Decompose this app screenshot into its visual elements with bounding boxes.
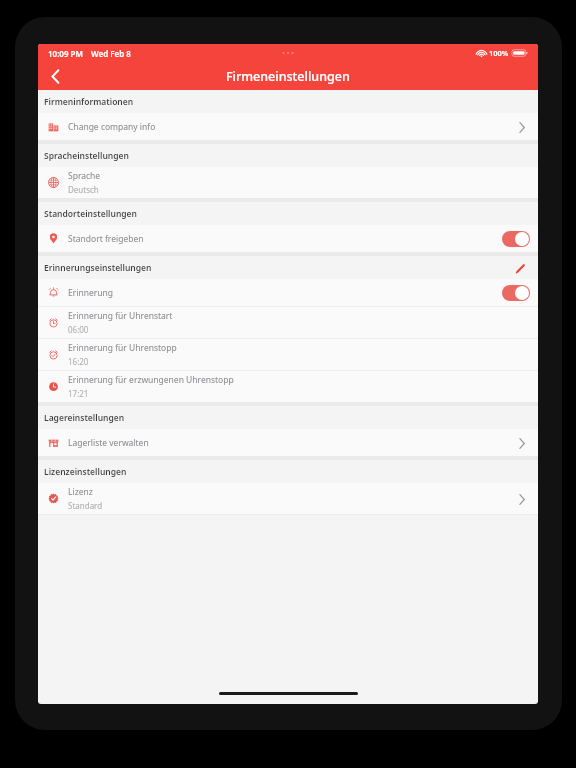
button[interactable]: Erinnerung (38, 279, 538, 306)
staticText: Erinnerungseinstellungen (44, 262, 152, 274)
staticText: Lizenz (68, 486, 93, 498)
staticText: 17:21 (68, 388, 89, 399)
staticText: Wed Feb 8 (91, 48, 131, 59)
staticText: Firmeninformationen (44, 96, 134, 108)
button[interactable]: Toggle (502, 231, 530, 247)
staticText: Lagereinstellungen (44, 412, 125, 424)
button[interactable]: Toggle (502, 285, 530, 301)
button[interactable]: Sprache (38, 167, 538, 198)
staticText: Spracheinstellungen (44, 150, 129, 162)
staticText: Standorteinstellungen (44, 208, 138, 220)
staticText: Sprache (68, 170, 101, 182)
staticText: 10:09 PM (48, 48, 83, 59)
button[interactable]: Edit reminders (510, 258, 530, 278)
button[interactable]: Standort freigeben (38, 225, 538, 252)
button[interactable]: Change company info (38, 113, 538, 140)
button[interactable]: Back (38, 62, 72, 90)
staticText: Erinnerung für Uhrenstart (68, 310, 173, 322)
staticText: 16:20 (68, 356, 89, 367)
staticText: 100% (489, 48, 509, 58)
staticText: Standort freigeben (68, 233, 144, 245)
button[interactable]: Erinnerung für Uhrenstart (38, 307, 538, 338)
staticText: Erinnerung für Uhrenstopp (68, 342, 177, 354)
staticText: Firmeneinstellungen (226, 68, 350, 85)
staticText: Standard (68, 500, 103, 511)
staticText: Lizenzeinstellungen (44, 466, 127, 478)
staticText: Deutsch (68, 184, 99, 195)
staticText: Erinnerung (68, 287, 113, 299)
button[interactable]: Lagerliste verwalten (38, 429, 538, 456)
staticText: Lagerliste verwalten (68, 437, 149, 449)
button[interactable]: Erinnerung für erzwungenen Uhrenstopp (38, 371, 538, 402)
button[interactable]: Erinnerung für Uhrenstopp (38, 339, 538, 370)
staticText: Change company info (68, 121, 156, 133)
button[interactable]: Lizenz (38, 483, 538, 514)
staticText: Erinnerung für erzwungenen Uhrenstopp (68, 374, 234, 386)
staticText: 06:00 (68, 324, 89, 335)
